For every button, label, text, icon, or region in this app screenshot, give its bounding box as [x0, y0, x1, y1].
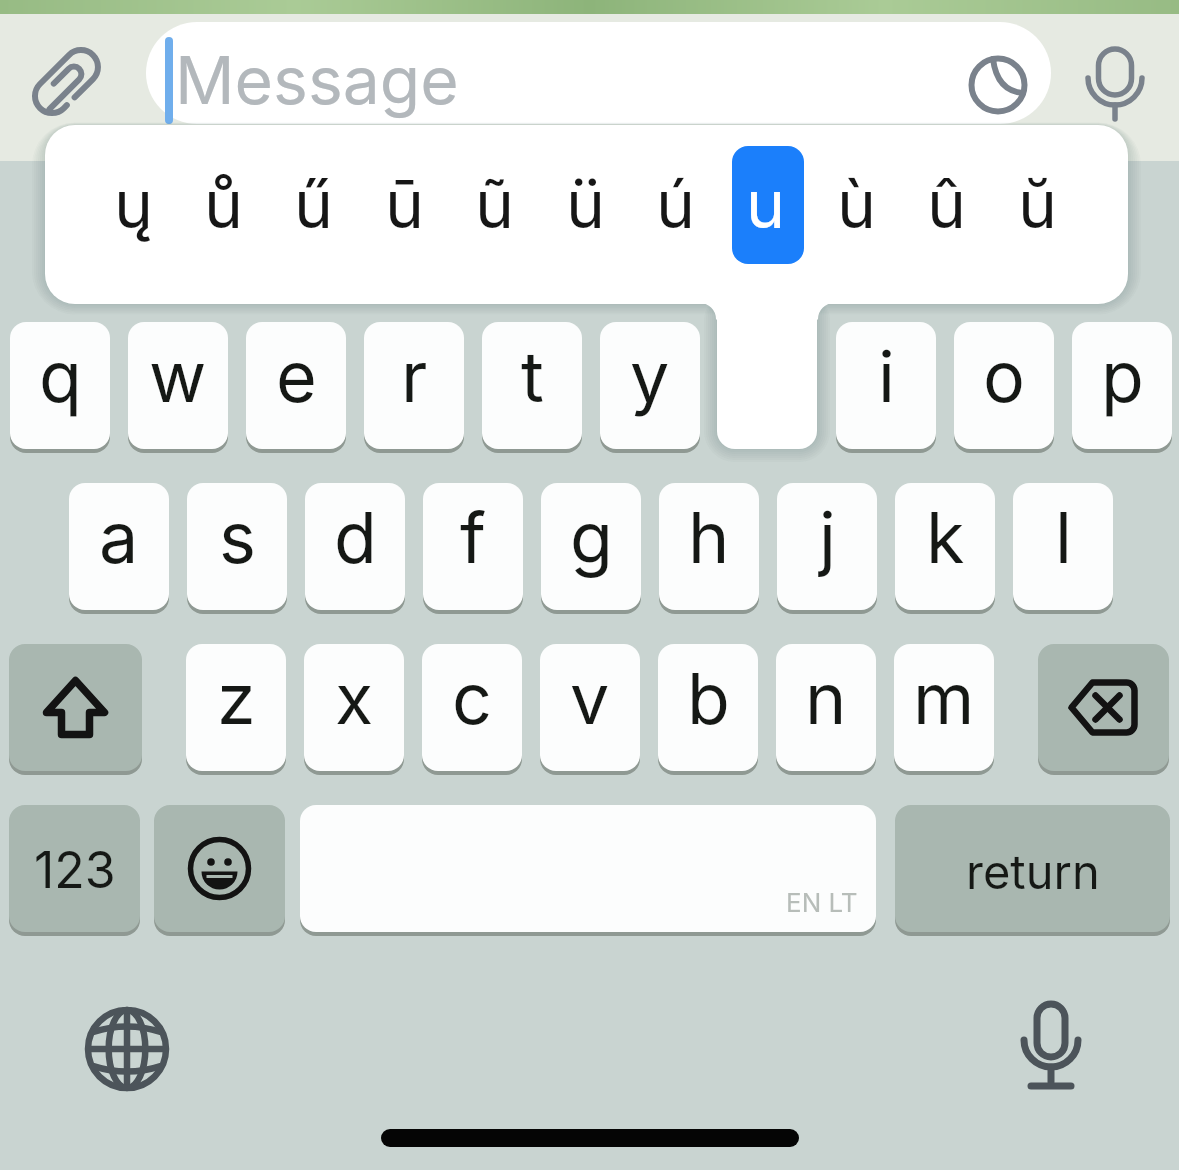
button[interactable]: a — [69, 483, 169, 610]
staticText: j — [819, 495, 836, 580]
button[interactable]: h — [659, 483, 759, 610]
button[interactable]: 123 — [9, 805, 140, 932]
staticText: a — [99, 495, 139, 580]
button[interactable] — [1038, 644, 1169, 771]
staticText: x — [335, 656, 374, 741]
staticText: return — [966, 843, 1100, 900]
button[interactable] — [960, 45, 1040, 125]
button[interactable]: ų — [89, 146, 179, 264]
button[interactable]: ū — [360, 146, 450, 264]
button[interactable]: ù — [812, 146, 902, 264]
staticText: z — [217, 656, 256, 741]
button[interactable]: u — [721, 146, 811, 264]
button[interactable]: return — [895, 805, 1170, 932]
button[interactable]: p — [1072, 322, 1172, 449]
button[interactable]: r — [364, 322, 464, 449]
button[interactable]: z — [186, 644, 286, 771]
staticText: d — [334, 495, 377, 580]
staticText: f — [460, 495, 486, 580]
staticText: w — [149, 334, 207, 419]
button[interactable] — [1007, 1000, 1095, 1088]
staticText: l — [1055, 495, 1072, 580]
button[interactable]: s — [187, 483, 287, 610]
button[interactable] — [83, 1005, 171, 1093]
button[interactable]: n — [776, 644, 876, 771]
staticText: ú — [656, 164, 696, 244]
button[interactable]: ũ — [450, 146, 540, 264]
staticText: û — [927, 164, 967, 244]
staticText: k — [926, 495, 965, 580]
button[interactable] — [9, 644, 142, 771]
staticText: g — [570, 495, 613, 580]
staticText: ů — [204, 164, 244, 244]
staticText: s — [219, 495, 256, 580]
staticText: u — [746, 164, 786, 244]
staticText: m — [913, 656, 975, 741]
button[interactable] — [146, 22, 1051, 124]
button[interactable]: b — [658, 644, 758, 771]
button[interactable]: EN LT — [300, 805, 876, 932]
button[interactable]: d — [305, 483, 405, 610]
staticText: r — [401, 334, 428, 419]
button[interactable]: i — [836, 322, 936, 449]
staticText: 123 — [34, 840, 116, 900]
staticText: c — [452, 656, 492, 741]
button[interactable]: g — [541, 483, 641, 610]
button[interactable] — [20, 40, 108, 128]
button[interactable]: j — [777, 483, 877, 610]
staticText: ù — [837, 164, 877, 244]
button[interactable]: ů — [179, 146, 269, 264]
button[interactable]: e — [246, 322, 346, 449]
staticText: Message — [175, 40, 459, 120]
button[interactable]: f — [423, 483, 523, 610]
staticText: ũ — [475, 164, 515, 244]
button[interactable] — [1075, 42, 1159, 126]
staticText: ŭ — [1018, 164, 1058, 244]
button[interactable]: û — [902, 146, 992, 264]
button[interactable]: ű — [269, 146, 359, 264]
staticText: ü — [566, 164, 606, 244]
staticText: ų — [114, 164, 154, 244]
button[interactable]: t — [482, 322, 582, 449]
staticText: h — [688, 495, 730, 580]
button[interactable]: o — [954, 322, 1054, 449]
button[interactable]: l — [1013, 483, 1113, 610]
staticText: ű — [294, 164, 334, 244]
staticText: e — [276, 334, 317, 419]
staticText: q — [39, 334, 82, 419]
button[interactable] — [154, 805, 285, 932]
staticText: t — [521, 334, 544, 419]
staticText: i — [878, 334, 895, 419]
button[interactable]: ú — [631, 146, 721, 264]
button[interactable]: ŭ — [993, 146, 1083, 264]
button[interactable]: k — [895, 483, 995, 610]
staticText: y — [630, 334, 670, 419]
button[interactable]: c — [422, 644, 522, 771]
staticText: EN LT — [786, 887, 858, 918]
staticText: o — [983, 334, 1025, 419]
staticText: b — [687, 656, 730, 741]
button[interactable]: v — [540, 644, 640, 771]
button[interactable]: y — [600, 322, 700, 449]
staticText: v — [570, 656, 610, 741]
button[interactable]: ü — [541, 146, 631, 264]
button[interactable]: w — [128, 322, 228, 449]
button[interactable]: m — [894, 644, 994, 771]
button[interactable]: x — [304, 644, 404, 771]
staticText: p — [1101, 334, 1144, 419]
staticText: ū — [385, 164, 425, 244]
button[interactable]: q — [10, 322, 110, 449]
staticText: n — [805, 656, 847, 741]
